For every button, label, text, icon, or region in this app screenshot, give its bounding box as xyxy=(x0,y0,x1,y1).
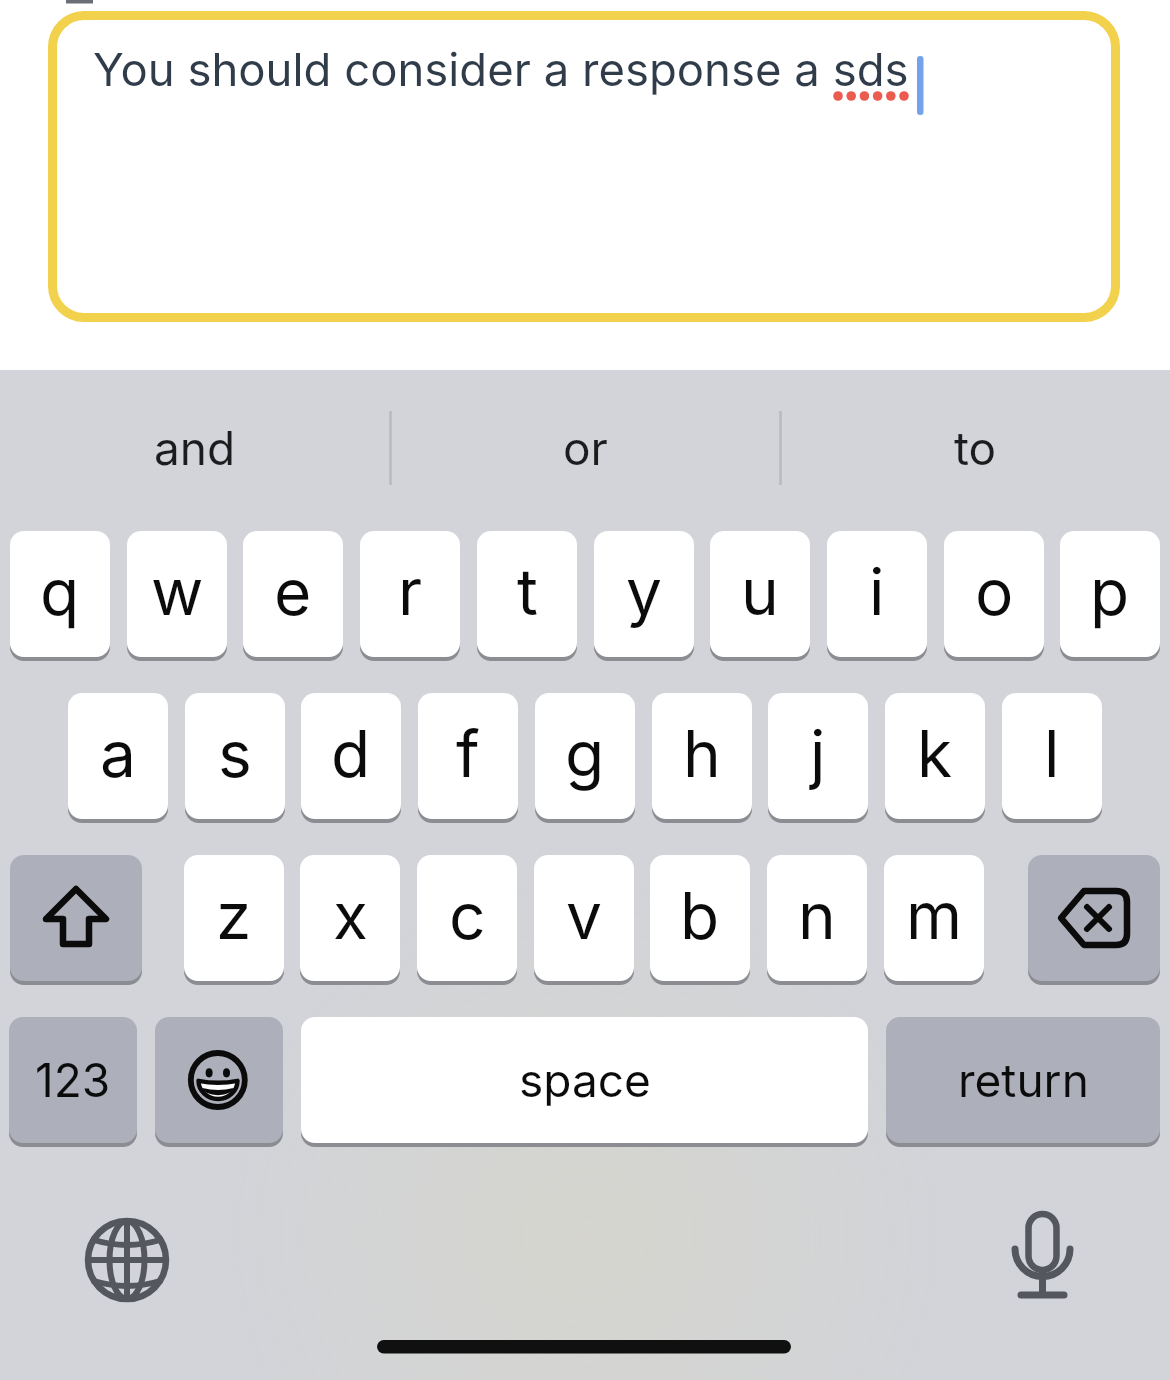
button[interactable]: k xyxy=(885,693,985,823)
button[interactable] xyxy=(155,1017,283,1147)
button[interactable]: c xyxy=(417,855,517,985)
staticText: o xyxy=(975,553,1014,630)
button[interactable]: m xyxy=(884,855,984,985)
staticText: q xyxy=(40,553,80,630)
button[interactable]: y xyxy=(594,531,694,661)
staticText: to xyxy=(954,420,997,476)
staticText: y xyxy=(626,553,662,630)
button[interactable]: v xyxy=(534,855,634,985)
staticText: w xyxy=(151,553,204,630)
button[interactable]: r xyxy=(360,531,460,661)
staticText: h xyxy=(683,715,721,792)
staticText: i xyxy=(869,553,885,630)
button[interactable]: to xyxy=(780,400,1170,496)
button[interactable]: or xyxy=(390,400,780,496)
staticText: k xyxy=(917,715,953,792)
button[interactable]: p xyxy=(1060,531,1160,661)
staticText: a xyxy=(100,715,136,792)
staticText: space xyxy=(519,1052,651,1108)
button[interactable]: l xyxy=(1002,693,1102,823)
button[interactable]: b xyxy=(650,855,750,985)
staticText: e xyxy=(274,553,312,630)
button[interactable]: s xyxy=(185,693,285,823)
staticText: c xyxy=(449,877,486,954)
button[interactable]: w xyxy=(127,531,227,661)
staticText: r xyxy=(398,553,423,630)
staticText: n xyxy=(798,877,836,954)
staticText: s xyxy=(218,715,252,792)
staticText: g xyxy=(565,715,605,792)
staticText: or xyxy=(563,420,608,476)
staticText: f xyxy=(456,715,480,792)
button[interactable]: j xyxy=(768,693,868,823)
button[interactable]: d xyxy=(301,693,401,823)
button[interactable] xyxy=(1028,855,1160,985)
button[interactable] xyxy=(995,1205,1090,1305)
staticText: l xyxy=(1044,715,1060,792)
staticText: z xyxy=(216,877,252,954)
button[interactable]: i xyxy=(827,531,927,661)
button[interactable]: return xyxy=(886,1017,1160,1147)
staticText: b xyxy=(680,877,720,954)
button[interactable]: u xyxy=(710,531,810,661)
button[interactable]: t xyxy=(477,531,577,661)
button[interactable]: z xyxy=(184,855,284,985)
button[interactable]: o xyxy=(944,531,1044,661)
staticText: You should consider a response a sds xyxy=(93,42,909,97)
button[interactable]: and xyxy=(0,400,390,496)
button[interactable]: a xyxy=(68,693,168,823)
button[interactable]: 123 xyxy=(9,1017,137,1147)
button[interactable]: e xyxy=(243,531,343,661)
staticText: 123 xyxy=(35,1052,111,1108)
staticText: t xyxy=(517,553,538,630)
button[interactable] xyxy=(77,1210,177,1310)
staticText: d xyxy=(331,715,371,792)
staticText: v xyxy=(566,877,602,954)
staticText: and xyxy=(154,420,236,476)
staticText: m xyxy=(906,877,963,954)
button[interactable] xyxy=(48,11,1120,322)
staticText: p xyxy=(1090,553,1130,630)
button[interactable]: g xyxy=(535,693,635,823)
button[interactable]: n xyxy=(767,855,867,985)
button[interactable]: f xyxy=(418,693,518,823)
staticText: j xyxy=(810,715,826,792)
button[interactable] xyxy=(10,855,142,985)
button[interactable]: space xyxy=(301,1017,868,1147)
staticText: return xyxy=(958,1052,1089,1108)
button[interactable]: x xyxy=(300,855,400,985)
button[interactable]: q xyxy=(10,531,110,661)
staticText: u xyxy=(741,553,779,630)
button[interactable]: h xyxy=(652,693,752,823)
staticText: x xyxy=(333,877,368,954)
